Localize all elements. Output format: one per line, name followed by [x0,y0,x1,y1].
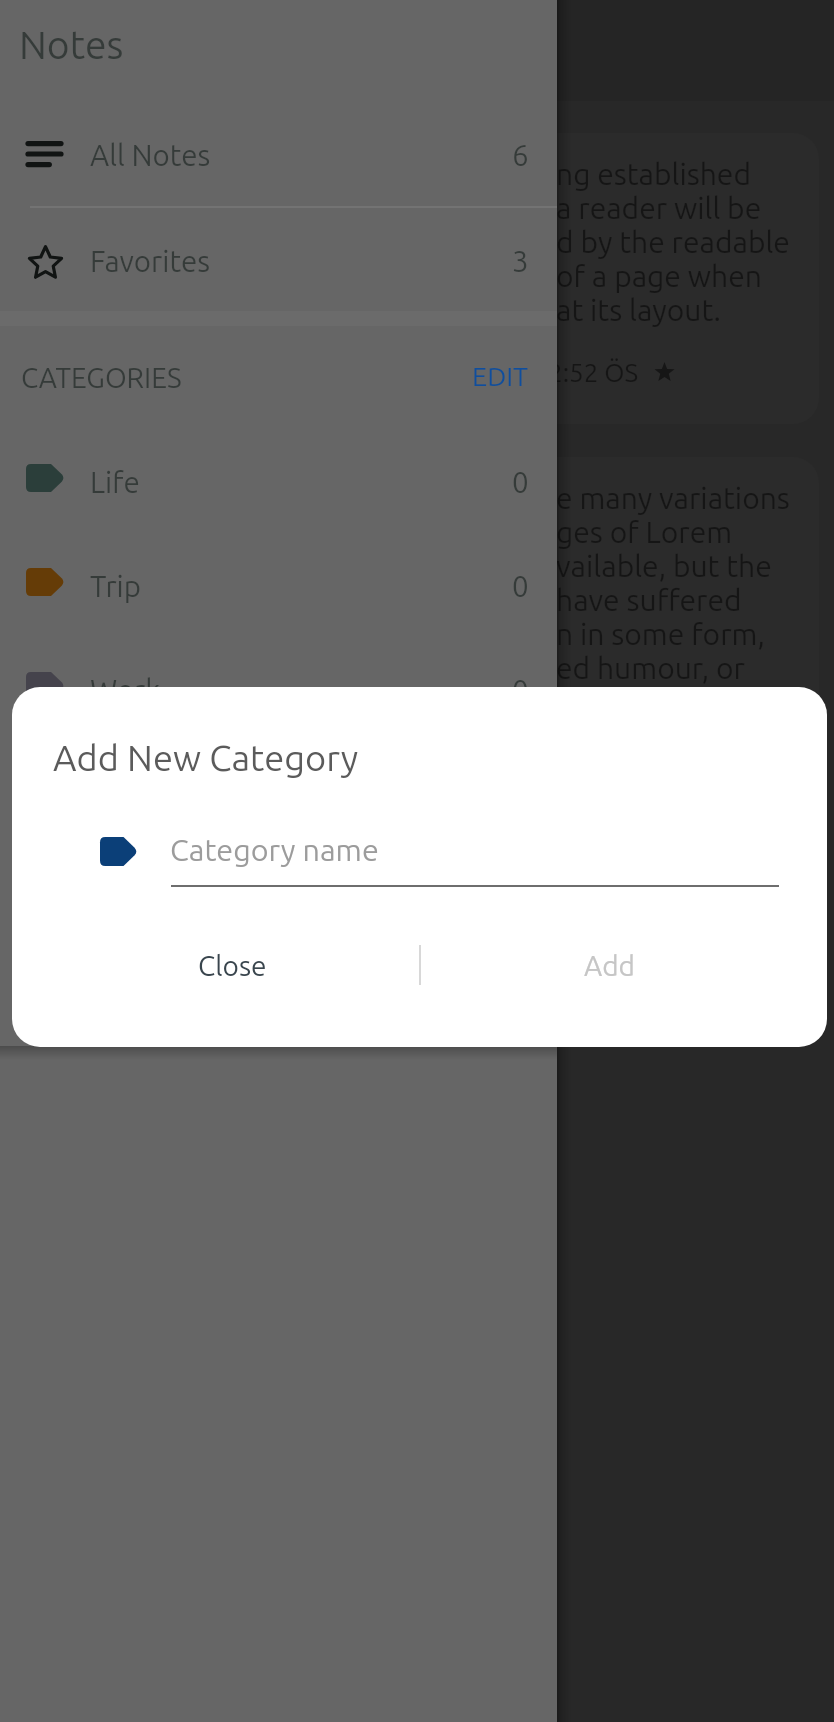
button[interactable]: Close [12,927,419,1007]
staticText: d by the readable [556,225,790,259]
staticText: 3 [512,245,529,278]
staticText: Add [584,950,635,981]
staticText: Add New Category [53,737,359,778]
staticText: Work [90,674,161,707]
staticText: ed humour, or [556,651,745,685]
button[interactable]: Favorites [0,209,557,313]
button[interactable]: EDIT [455,348,545,404]
staticText: at its layout. [556,293,721,327]
button[interactable]: Trip [0,534,557,638]
button[interactable]: Add [419,927,827,1007]
staticText: 0 [512,466,529,499]
staticText: ng established [556,157,751,191]
staticText: Life [90,466,140,499]
staticText: 2:52 ÖS [548,358,639,387]
staticText: vailable, but the [556,549,772,583]
staticText: have suffered [556,583,742,617]
staticText: 0 [512,570,529,603]
staticText: Trip [90,570,142,603]
staticText: 6 [512,139,529,172]
staticText: 0 [512,674,529,707]
other: Favorites [27,245,64,280]
staticText: e many variations [556,481,790,515]
staticText: Close [198,950,267,981]
staticText: All Notes [90,139,211,172]
other: All notes [26,141,63,169]
staticText: Favorites [90,245,211,278]
staticText: EDIT [472,361,529,391]
staticText: n in some form, [556,617,765,651]
staticText: Category name [170,833,379,867]
button[interactable]: Life [0,430,557,534]
staticText: CATEGORIES [21,362,182,393]
staticText: of a page when [556,259,762,293]
staticText: Notes [19,23,124,67]
button[interactable]: Work [0,638,557,742]
staticText: ges of Lorem [556,515,733,549]
button[interactable]: All notes [0,103,557,207]
staticText: a reader will be [556,191,762,225]
